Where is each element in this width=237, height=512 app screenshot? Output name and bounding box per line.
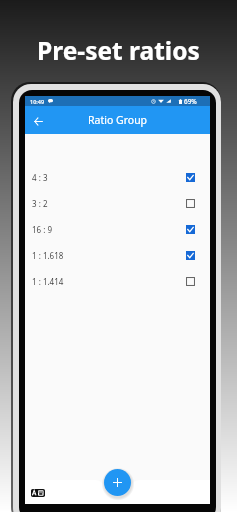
staticText: 3 : 2 (32, 198, 48, 209)
button[interactable]: 3 : 2 (25, 190, 210, 216)
button[interactable]: Switch keyboard (31, 489, 45, 497)
staticText: 10:49 (30, 98, 45, 105)
staticText: 16 : 9 (32, 224, 53, 235)
staticText: Pre-set ratios (37, 34, 200, 67)
staticText: 1 : 1.618 (32, 250, 64, 261)
staticText: 4 : 3 (32, 172, 48, 183)
staticText: Ratio Group (88, 113, 148, 127)
staticText: 1 : 1.414 (32, 276, 64, 287)
staticText: 69% (184, 97, 197, 106)
button[interactable]: 1 : 1.414 (25, 268, 210, 294)
button[interactable]: Back (28, 111, 48, 131)
button[interactable]: 1 : 1.618 (25, 242, 210, 268)
button[interactable]: 4 : 3 (25, 164, 210, 190)
button[interactable]: Add (104, 469, 131, 496)
button[interactable]: 16 : 9 (25, 216, 210, 242)
